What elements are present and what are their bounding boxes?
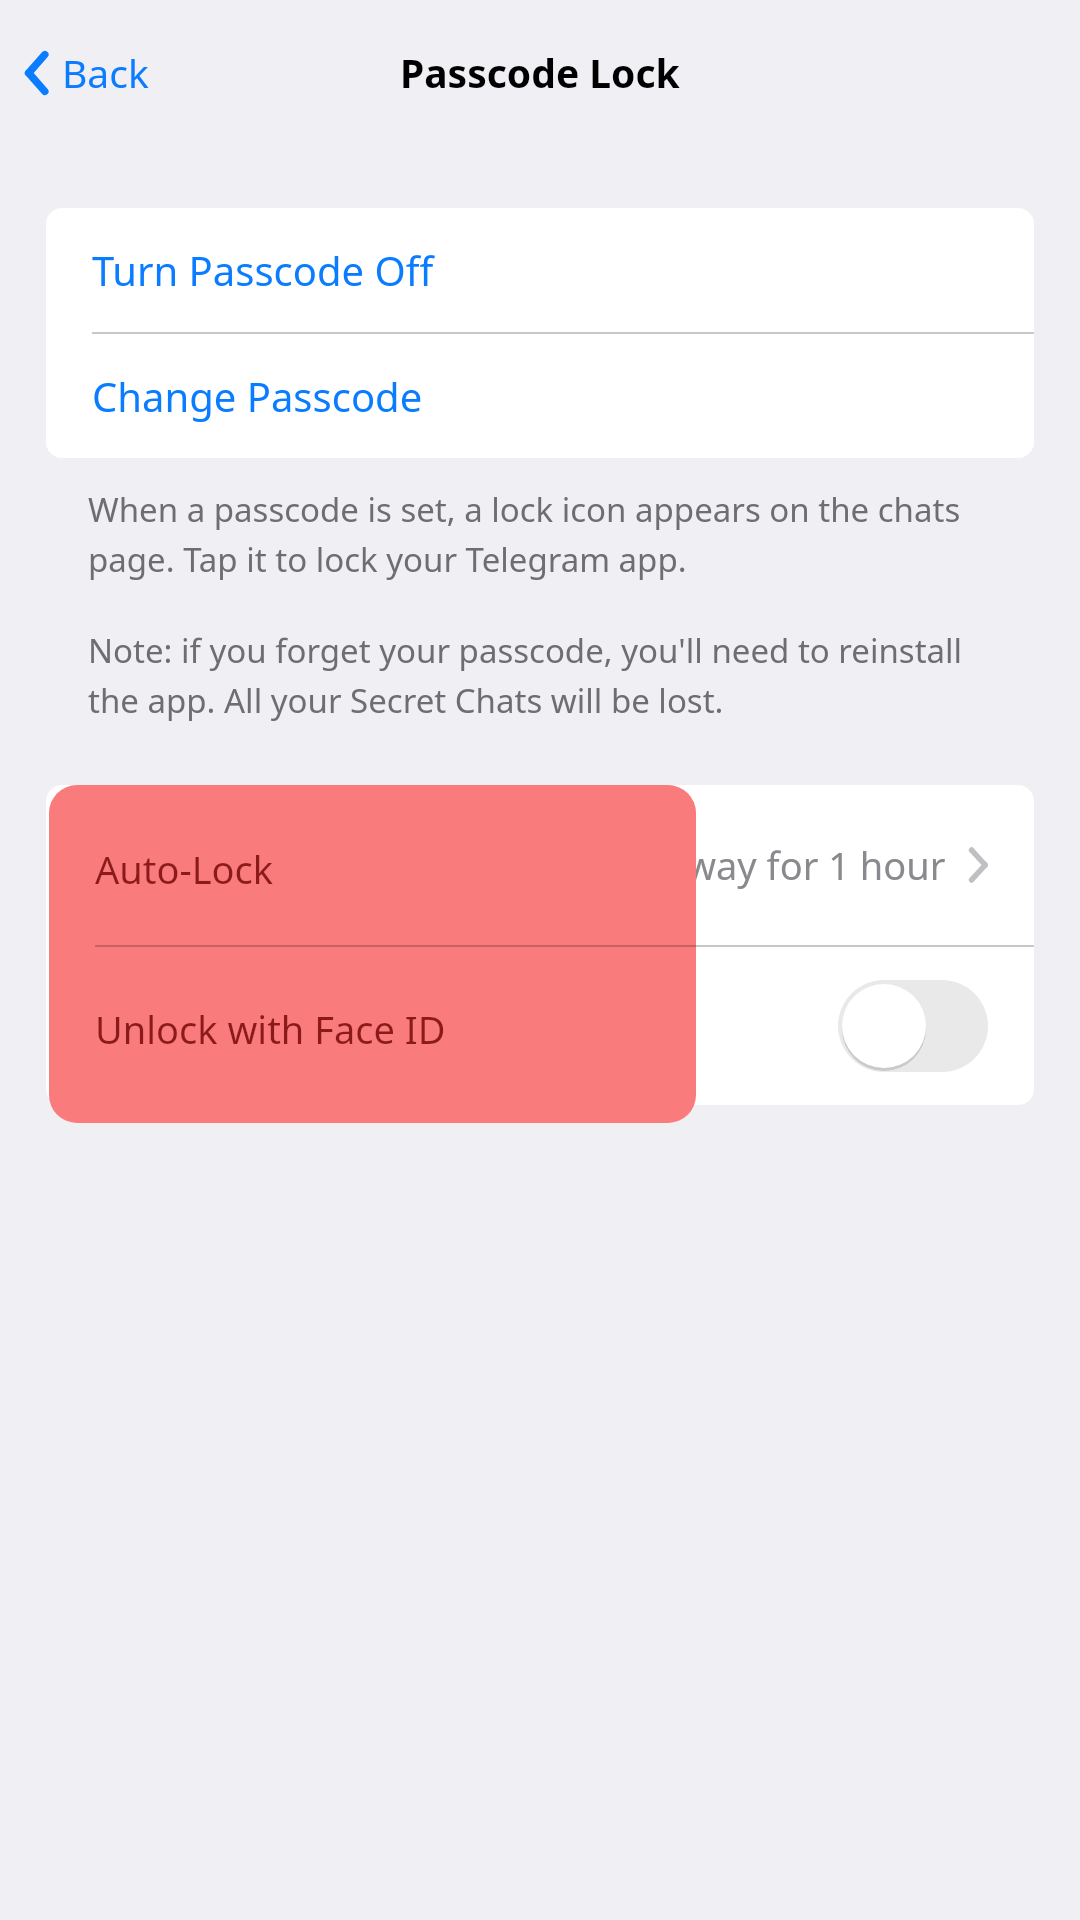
staticText: Turn Passcode Off (92, 243, 434, 297)
button[interactable]: Back (14, 36, 159, 109)
staticText: Note: if you forget your passcode, you'l… (88, 628, 992, 723)
button[interactable]: Unlock with Face ID (46, 947, 1034, 1105)
staticText: When a passcode is set, a lock icon appe… (88, 487, 992, 582)
staticText: Auto-Lock (92, 839, 271, 891)
staticText: If away for 1 hour (629, 839, 946, 891)
button[interactable]: Turn Passcode Off (46, 208, 1034, 332)
staticText: Change Passcode (92, 369, 423, 423)
button[interactable]: Auto-Lock (46, 785, 1034, 945)
staticText: Back (62, 46, 149, 99)
button[interactable]: Change Passcode (46, 334, 1034, 458)
staticText: Unlock with Face ID (92, 1000, 443, 1052)
staticText: Auto-Lock (95, 843, 274, 895)
button[interactable]: Unlock with Face ID toggle (838, 980, 988, 1072)
staticText: Passcode Lock (400, 46, 680, 99)
staticText: Unlock with Face ID (95, 1003, 446, 1055)
